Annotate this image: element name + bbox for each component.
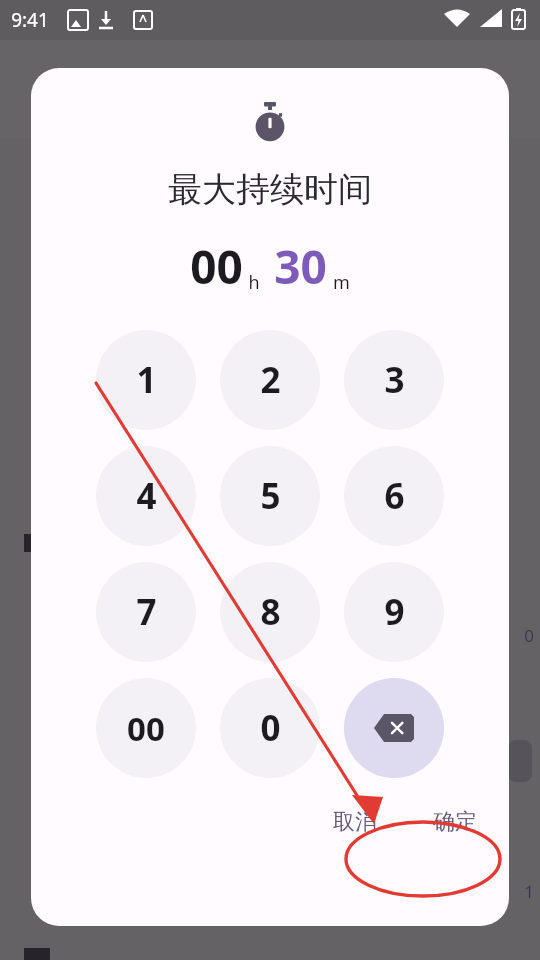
staticText: 30: [274, 235, 327, 298]
button[interactable]: 取消: [315, 798, 395, 846]
button[interactable]: 3: [344, 330, 444, 430]
staticText: 1: [524, 880, 534, 903]
button[interactable]: 4: [96, 446, 196, 546]
staticText: m: [333, 270, 350, 295]
staticText: 2: [260, 356, 281, 404]
staticText: 5: [260, 472, 281, 520]
staticText: 4: [136, 472, 157, 520]
staticText: h: [248, 270, 260, 295]
staticText: 00: [127, 706, 165, 751]
button[interactable]: 5: [220, 446, 320, 546]
staticText: 0: [524, 624, 534, 647]
staticText: 7: [136, 588, 157, 636]
button[interactable]: 9: [344, 562, 444, 662]
button[interactable]: 确定: [411, 798, 499, 846]
button[interactable]: Backspace: [344, 678, 444, 778]
button[interactable]: 1: [96, 330, 196, 430]
staticText: 8: [260, 588, 281, 636]
button[interactable]: 6: [344, 446, 444, 546]
staticText: 取消: [333, 808, 377, 836]
button[interactable]: 8: [220, 562, 320, 662]
button[interactable]: 7: [96, 562, 196, 662]
button[interactable]: 0: [220, 678, 320, 778]
staticText: 确定: [433, 808, 477, 836]
staticText: 1: [136, 356, 157, 404]
staticText: 3: [384, 356, 405, 404]
staticText: 6: [384, 472, 405, 520]
staticText: 最大持续时间: [168, 168, 372, 211]
button[interactable]: 00: [96, 678, 196, 778]
button[interactable]: 2: [220, 330, 320, 430]
staticText: 9: [384, 588, 405, 636]
staticText: 9:41: [11, 7, 49, 33]
staticText: 0: [260, 704, 281, 752]
staticText: 00: [190, 235, 243, 298]
